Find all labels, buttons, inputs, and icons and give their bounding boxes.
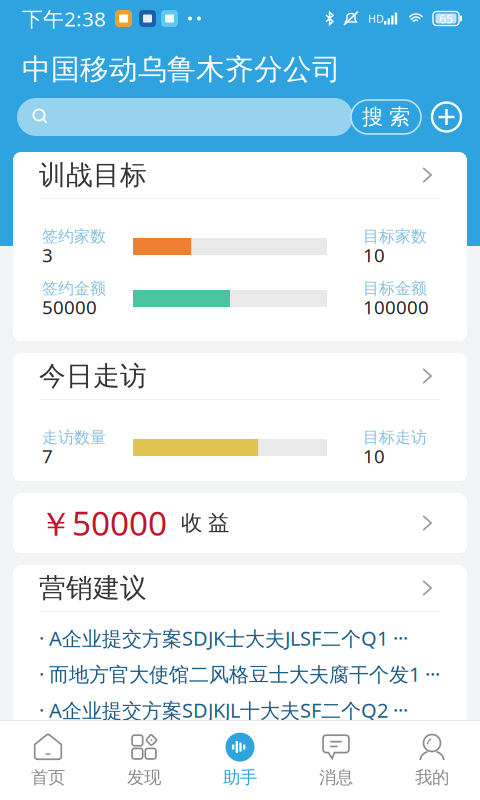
button[interactable]: 训战目标 (13, 152, 467, 199)
staticText: 营销建议 (39, 571, 147, 605)
staticText: 今日走访 (39, 359, 147, 393)
button[interactable]: ￥50000 (13, 493, 467, 553)
button[interactable]: 营销建议 (13, 565, 467, 612)
staticText: 助手 (223, 767, 257, 788)
staticText: · 而地方官大使馆二风格豆士大夫腐干个发1 ··· (39, 660, 440, 688)
staticText: 65 (439, 10, 453, 27)
staticText: 下午2:38 (22, 4, 106, 32)
staticText: · A企业提交方案SDJK士大夫JLSF二个Q1 ··· (39, 624, 408, 652)
button[interactable]: 发现 (96, 721, 192, 800)
staticText: 训战目标 (39, 158, 147, 192)
staticText: 3 (42, 242, 53, 268)
staticText: 10 (363, 242, 385, 268)
staticText: 走访数量 (42, 427, 106, 448)
staticText: 我的 (415, 767, 449, 788)
staticText: 中国移动乌鲁木齐分公司 (22, 51, 341, 87)
button[interactable]: Add (432, 102, 461, 131)
staticText: 搜 索 (362, 104, 410, 130)
staticText: 签约家数 (42, 226, 106, 247)
staticText: ￥50000 (39, 500, 167, 546)
staticText: 7 (42, 443, 53, 469)
staticText: 签约金额 (42, 278, 106, 299)
button[interactable]: 助手 (192, 721, 288, 800)
staticText: 首页 (31, 767, 65, 788)
staticText: 100000 (363, 294, 429, 320)
staticText: · A企业提交方案SDJKJL十大夫SF二个Q2 ··· (39, 696, 408, 724)
staticText: 发现 (127, 767, 161, 788)
button[interactable]: 消息 (288, 721, 384, 800)
staticText: 目标家数 (363, 226, 427, 247)
staticText: 目标走访 (363, 427, 427, 448)
staticText: 50000 (42, 294, 97, 320)
staticText: 消息 (319, 767, 353, 788)
staticText: 目标金额 (363, 278, 427, 299)
button[interactable]: 我的 (384, 721, 480, 800)
staticText: HD (368, 11, 384, 26)
button[interactable]: 搜 索 (351, 100, 421, 134)
staticText: 收 益 (181, 510, 229, 536)
button[interactable]: 今日走访 (13, 353, 467, 400)
button[interactable]: 首页 (0, 721, 96, 800)
staticText: 10 (363, 443, 385, 469)
